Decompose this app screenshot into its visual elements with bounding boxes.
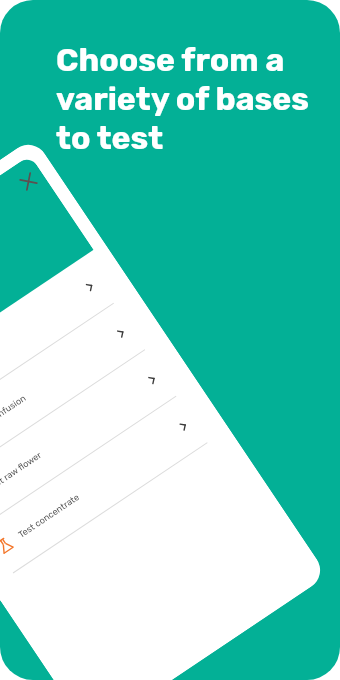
button[interactable]: Test butter infusion	[0, 296, 156, 488]
button[interactable]: Test raw flower	[0, 343, 187, 534]
button[interactable]: Close	[12, 165, 45, 198]
staticText: Test raw flower	[0, 449, 45, 494]
staticText: Choose from a variety of bases to test	[56, 41, 318, 157]
staticText: Test concentrate	[16, 491, 82, 541]
staticText: Test butter infusion	[0, 393, 28, 448]
button[interactable]: Test oil infusion	[0, 250, 125, 441]
button[interactable]: Test concentrate	[0, 389, 218, 581]
